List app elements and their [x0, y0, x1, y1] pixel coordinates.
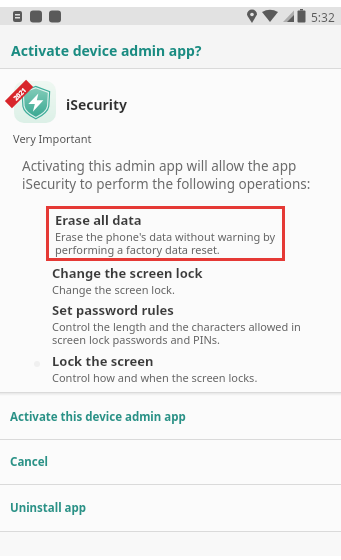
- staticText: Uninstall app: [10, 500, 87, 516]
- staticText: Set password rules: [52, 301, 174, 319]
- staticText: Control the length and the characters al…: [52, 319, 301, 347]
- staticText: Activating this admin app will allow the…: [22, 157, 311, 193]
- staticText: Change the screen lock: [52, 264, 203, 282]
- staticText: Lock the screen: [52, 352, 154, 370]
- staticText: 2021: [11, 85, 28, 102]
- button[interactable]: Cancel: [0, 439, 341, 485]
- staticText: Erase all data: [55, 211, 142, 229]
- staticText: Change the screen lock.: [52, 282, 175, 297]
- button[interactable]: Uninstall app: [0, 485, 341, 531]
- staticText: 5:32: [311, 9, 335, 25]
- button[interactable]: Activate this device admin app: [0, 394, 341, 440]
- staticText: Control how and when the screen locks.: [52, 370, 258, 385]
- staticText: Activate this device admin app: [10, 409, 186, 425]
- staticText: Erase the phone's data without warning b…: [55, 229, 276, 257]
- staticText: Activate device admin app?: [11, 41, 202, 60]
- staticText: Very Important: [13, 131, 92, 146]
- staticText: Cancel: [10, 454, 48, 470]
- staticText: iSecurity: [66, 95, 128, 114]
